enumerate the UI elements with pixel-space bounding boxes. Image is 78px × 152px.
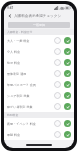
button[interactable]: 否認	[54, 37, 61, 44]
button[interactable]: 承認	[64, 59, 71, 66]
button[interactable]: 幼児 料金	[4, 57, 74, 68]
staticText: 9:41	[7, 6, 14, 10]
staticText: 小人 料金	[7, 50, 21, 54]
button[interactable]: 年間パスポート 会員	[4, 79, 74, 90]
button[interactable]: 大人・一般 料金	[4, 35, 74, 46]
button[interactable]: シニア割引 対象	[4, 90, 74, 101]
button[interactable]: 夜間・イベント 料金	[4, 118, 74, 129]
staticText: 入園料金・料金区分	[7, 30, 33, 34]
staticText: 一括承認	[33, 23, 45, 27]
button[interactable]: 否認	[54, 81, 61, 88]
button[interactable]: 承認	[64, 92, 71, 99]
button[interactable]: 承認	[64, 120, 71, 127]
button[interactable]: 承認	[64, 37, 71, 44]
button[interactable]: 否認	[54, 103, 61, 110]
staticText: シニア割引 対象	[7, 94, 30, 98]
button[interactable]: 否認	[54, 120, 61, 127]
button[interactable]: 否認	[54, 48, 61, 55]
button[interactable]: 障がい者割引 対象	[4, 101, 74, 112]
staticText: 特別料金	[7, 113, 19, 117]
staticText: 夜間・イベント 料金	[7, 122, 36, 126]
button[interactable]: 承認	[64, 48, 71, 55]
button[interactable]: 戻る	[6, 12, 14, 20]
staticText: 年間パスポート 会員	[7, 83, 36, 87]
button[interactable]: 承認	[64, 103, 71, 110]
button[interactable]: 承認	[64, 81, 71, 88]
staticText: 大人・一般 料金	[7, 39, 30, 43]
button[interactable]: 団体割引 適用	[4, 68, 74, 79]
staticText: 障がい者割引 対象	[7, 105, 33, 109]
staticText: 幼児 料金	[7, 61, 21, 65]
button[interactable]: 一括承認	[8, 22, 70, 28]
staticText: 入園料金表示承認チェックシート	[14, 14, 64, 19]
button[interactable]: 承認	[64, 70, 71, 77]
button[interactable]: 早朝 料金	[4, 129, 74, 140]
button[interactable]: 小人 料金	[4, 46, 74, 57]
staticText: 早朝 料金	[7, 133, 21, 137]
button[interactable]: 否認	[54, 59, 61, 66]
staticText: 団体割引 適用	[7, 72, 27, 76]
button[interactable]: 否認	[54, 92, 61, 99]
button[interactable]: 否認	[54, 70, 61, 77]
button[interactable]: 否認	[54, 131, 61, 138]
button[interactable]: 承認	[64, 131, 71, 138]
